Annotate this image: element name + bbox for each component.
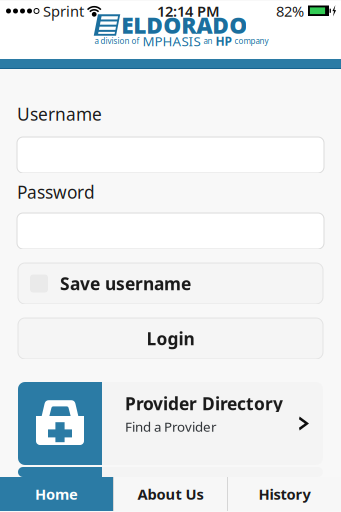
button[interactable]: Save username bbox=[18, 263, 323, 304]
staticText: MPHASIS bbox=[142, 32, 200, 50]
staticText: Password bbox=[17, 180, 95, 203]
button[interactable]: Home bbox=[0, 477, 113, 511]
staticText: Home bbox=[35, 484, 78, 504]
staticText: About Us bbox=[137, 484, 203, 504]
staticText: an bbox=[203, 36, 212, 46]
button[interactable]: About Us bbox=[114, 477, 227, 511]
staticText: company bbox=[234, 36, 268, 46]
staticText: Username bbox=[17, 102, 102, 125]
button[interactable]: History bbox=[228, 477, 341, 511]
staticText: Provider Directory bbox=[125, 392, 283, 415]
staticText: History bbox=[258, 484, 310, 504]
staticText: HP bbox=[215, 33, 231, 49]
button[interactable] bbox=[18, 467, 323, 477]
staticText: Save username bbox=[60, 272, 191, 295]
staticText: 12:14 PM bbox=[157, 1, 220, 21]
staticText: Sprint bbox=[43, 1, 84, 21]
button[interactable]: Provider Directory bbox=[18, 382, 323, 465]
staticText: Login bbox=[146, 327, 194, 350]
staticText: a division of bbox=[94, 36, 139, 46]
staticText: Find a Provider bbox=[125, 418, 217, 435]
button[interactable]: Login bbox=[18, 318, 323, 359]
staticText: ELDORADO bbox=[121, 10, 247, 40]
staticText: 82% bbox=[276, 1, 304, 21]
